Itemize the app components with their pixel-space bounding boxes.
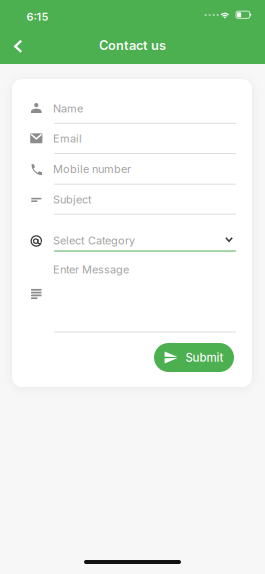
staticText: Name — [53, 102, 83, 115]
staticText: Submit — [186, 351, 224, 364]
staticText: Subject — [53, 193, 92, 206]
staticText: 6:15 — [26, 10, 48, 23]
staticText: Enter Message — [53, 263, 129, 276]
staticText: Contact us — [99, 38, 166, 53]
button[interactable]: Submit — [154, 343, 234, 372]
staticText: Email — [53, 132, 82, 145]
staticText: Mobile number — [53, 162, 131, 176]
button[interactable]: Back — [3, 31, 33, 61]
staticText: Select Category — [53, 234, 135, 247]
